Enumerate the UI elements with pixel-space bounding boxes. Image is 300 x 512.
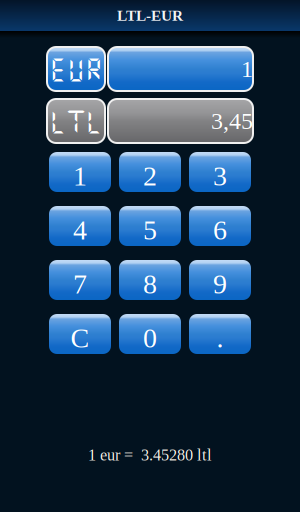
staticText: LTL: [49, 106, 103, 136]
staticText: 2: [143, 160, 157, 191]
staticText: 8: [143, 268, 157, 299]
staticText: 5: [143, 214, 157, 245]
staticText: 3: [213, 160, 227, 191]
staticText: 7: [73, 268, 87, 299]
staticText: LTL-EUR: [117, 7, 183, 24]
staticText: 3,45: [211, 108, 253, 134]
button[interactable]: 6: [189, 206, 251, 246]
staticText: 4: [73, 214, 87, 245]
button[interactable]: C: [49, 314, 111, 354]
button[interactable]: 3,45: [108, 99, 253, 143]
button[interactable]: EUR: [47, 47, 105, 91]
staticText: .: [216, 322, 223, 353]
staticText: 6: [213, 214, 227, 245]
staticText: EUR: [49, 54, 103, 84]
button[interactable]: 0: [119, 314, 181, 354]
button[interactable]: 7: [49, 260, 111, 300]
staticText: 1 eur = 3.45280 ltl: [88, 446, 212, 464]
button[interactable]: 5: [119, 206, 181, 246]
button[interactable]: LTL: [47, 99, 105, 143]
button[interactable]: 1: [49, 152, 111, 192]
button[interactable]: 1: [108, 47, 253, 91]
staticText: 0: [143, 322, 157, 353]
button[interactable]: 9: [189, 260, 251, 300]
button[interactable]: 4: [49, 206, 111, 246]
button[interactable]: .: [189, 314, 251, 354]
staticText: 9: [213, 268, 227, 299]
staticText: 1: [241, 56, 253, 82]
staticText: C: [70, 322, 89, 353]
button[interactable]: 3: [189, 152, 251, 192]
button[interactable]: 2: [119, 152, 181, 192]
button[interactable]: 8: [119, 260, 181, 300]
staticText: 1: [73, 160, 87, 191]
